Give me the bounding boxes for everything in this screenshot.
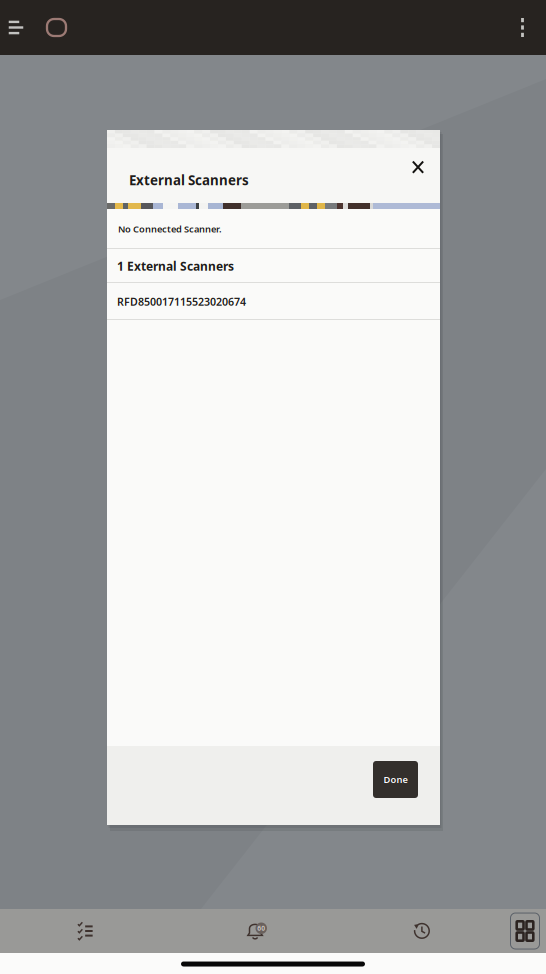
staticText: External Scanners [129,171,249,189]
button[interactable]: Done [373,761,418,798]
staticText: 60 [257,924,265,933]
button[interactable]: Close [403,153,433,181]
staticText: RFD850017115523020674 [117,294,246,309]
button[interactable]: Notifications [170,909,340,953]
button[interactable]: Home [32,0,81,55]
button[interactable]: Tasks [0,909,170,953]
button[interactable]: Menu [0,0,32,55]
staticText: Done [383,773,407,786]
button[interactable]: Apps [504,909,546,953]
button[interactable]: More options [499,0,546,55]
staticText: 1 External Scanners [117,258,234,274]
button[interactable]: History [340,909,504,953]
staticText: No Connected Scanner. [118,223,222,235]
button[interactable]: RFD850017115523020674 [107,283,440,320]
